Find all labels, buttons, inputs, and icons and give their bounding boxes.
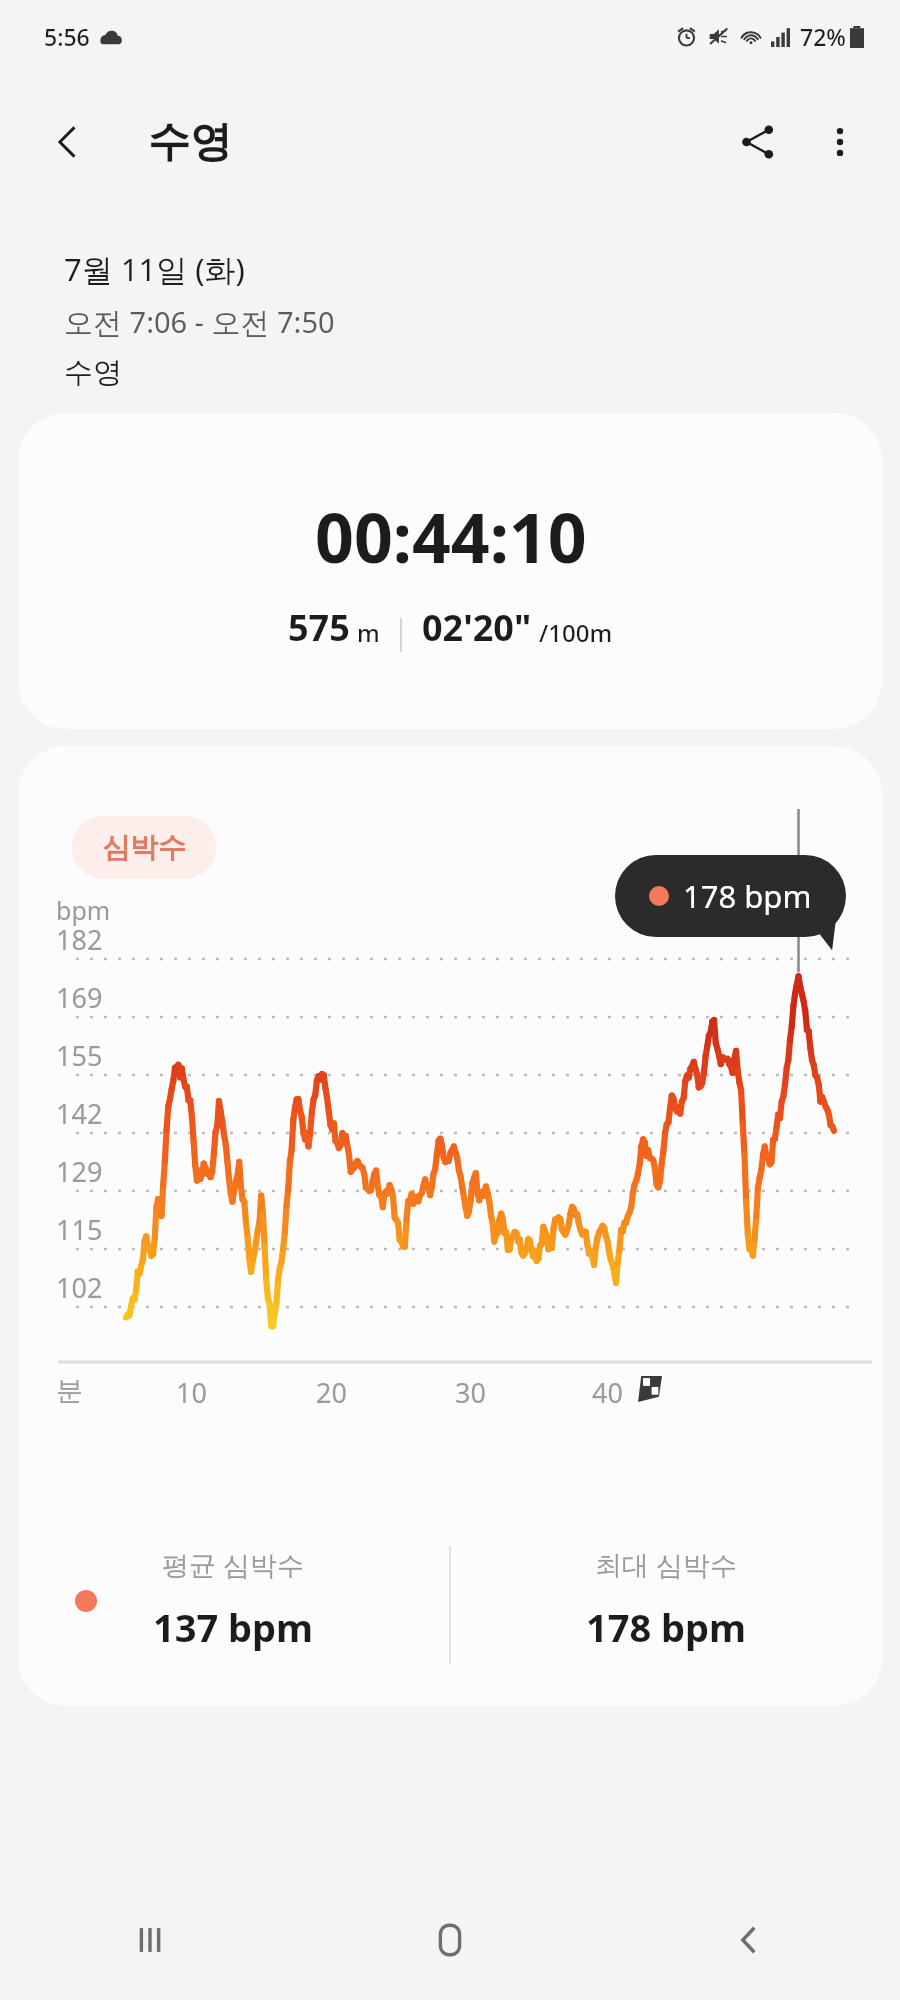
staticText: 7월 11일 (화) (64, 248, 245, 290)
button[interactable]: Recents (102, 1892, 198, 1988)
staticText: 오전 7:06 - 오전 7:50 (64, 302, 335, 342)
staticText: 575 (288, 603, 350, 652)
staticText: 평균 심박수 (162, 1546, 305, 1583)
staticText: /100m (539, 616, 613, 649)
staticText: 182 (56, 921, 103, 958)
button[interactable]: Home (402, 1892, 498, 1988)
staticText: 40 (592, 1374, 623, 1411)
button[interactable]: Back (30, 104, 106, 180)
button[interactable]: More options (800, 102, 880, 182)
staticText: 10 (176, 1374, 207, 1411)
button[interactable]: 00:44:10 (18, 413, 882, 729)
staticText: 최대 심박수 (595, 1546, 738, 1583)
staticText: m (357, 616, 380, 649)
staticText: 115 (56, 1211, 103, 1248)
staticText: 30 (455, 1374, 486, 1411)
staticText: 178 bpm (586, 1601, 747, 1653)
staticText: 5:56 (44, 21, 90, 52)
staticText: 수영 (148, 116, 232, 169)
button[interactable]: Back (702, 1892, 798, 1988)
staticText: bpm (56, 893, 111, 927)
button[interactable]: 178 bpm (615, 855, 846, 937)
staticText: 분 (56, 1374, 83, 1408)
staticText: 수영 (64, 354, 122, 391)
staticText: 20 (316, 1374, 347, 1411)
staticText: 169 (56, 979, 103, 1016)
button[interactable]: 심박수 (18, 746, 882, 1706)
staticText: 02'20" (422, 603, 532, 652)
staticText: 72% (800, 21, 846, 52)
staticText: 102 (56, 1269, 103, 1306)
button[interactable]: Share (716, 100, 800, 184)
staticText: 142 (56, 1095, 103, 1132)
staticText: 155 (56, 1037, 103, 1074)
button[interactable]: 심박수 (72, 816, 216, 879)
staticText: 178 bpm (683, 875, 812, 917)
staticText: 129 (56, 1153, 103, 1190)
staticText: 심박수 (102, 830, 186, 865)
staticText: 137 bpm (153, 1601, 314, 1653)
staticText: 00:44:10 (315, 490, 587, 583)
